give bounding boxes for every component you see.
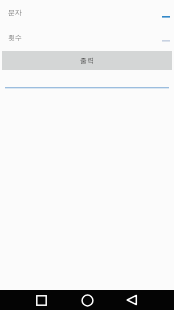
button[interactable]: 출력 [2, 51, 172, 70]
button[interactable]: 횟수 입력 [0, 29, 174, 51]
button[interactable]: 문자 입력 [0, 5, 174, 27]
button[interactable]: Back [118, 290, 146, 310]
staticText: 출력 [80, 56, 94, 65]
button[interactable]: Home [73, 290, 101, 310]
staticText: 문자 [8, 8, 22, 17]
staticText: 횟수 [8, 33, 22, 42]
button[interactable]: Recent apps [27, 290, 55, 310]
